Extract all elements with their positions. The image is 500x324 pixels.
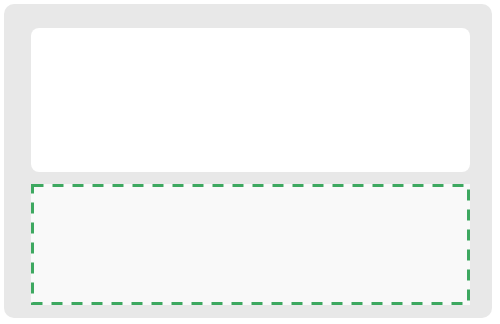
button[interactable]: Drop zone (31, 184, 470, 305)
